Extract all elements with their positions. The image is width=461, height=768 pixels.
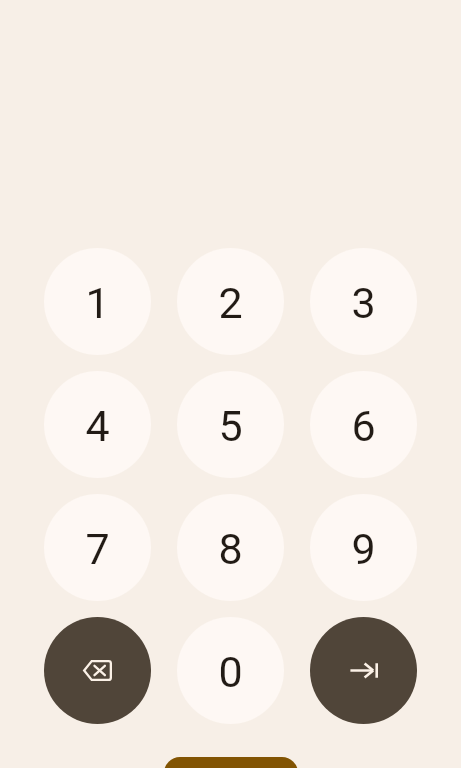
button[interactable]: Confirm (164, 757, 298, 768)
staticText: 1 (85, 278, 110, 328)
staticText: 6 (351, 401, 376, 451)
staticText: 3 (351, 278, 376, 328)
staticText: 7 (85, 524, 110, 574)
staticText: 2 (218, 278, 243, 328)
button[interactable]: 7 (44, 494, 151, 601)
staticText: 9 (351, 524, 376, 574)
staticText: 0 (218, 647, 243, 697)
button[interactable]: 8 (177, 494, 284, 601)
button[interactable]: Next (310, 617, 417, 724)
button[interactable]: 9 (310, 494, 417, 601)
button[interactable]: 3 (310, 248, 417, 355)
button[interactable]: 6 (310, 371, 417, 478)
button[interactable]: 4 (44, 371, 151, 478)
staticText: 4 (85, 401, 110, 451)
button[interactable]: 1 (44, 248, 151, 355)
button[interactable]: Backspace (44, 617, 151, 724)
button[interactable]: 0 (177, 617, 284, 724)
staticText: 8 (218, 524, 243, 574)
staticText: 5 (218, 401, 243, 451)
button[interactable]: 2 (177, 248, 284, 355)
button[interactable]: 5 (177, 371, 284, 478)
